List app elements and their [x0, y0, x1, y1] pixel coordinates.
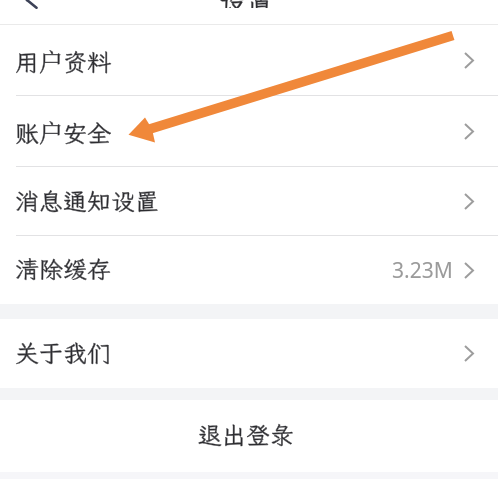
button[interactable]: 消息通知设置	[0, 167, 498, 236]
staticText: 退出登录	[198, 419, 294, 451]
staticText: 清除缓存	[15, 253, 111, 285]
staticText: 消息通知设置	[15, 185, 159, 217]
staticText: 用户资料	[15, 43, 111, 77]
staticText: 设置	[219, 0, 276, 8]
staticText: 清除缓存	[15, 253, 111, 285]
staticText: 3.23M	[392, 256, 453, 285]
staticText: 账户安全	[15, 114, 111, 148]
staticText: 用户资料	[15, 43, 111, 77]
staticText: 关于我们	[15, 337, 111, 369]
staticText: 关于我们	[15, 337, 111, 369]
button[interactable]: 关于我们	[0, 319, 498, 388]
button[interactable]: 用户资料	[0, 25, 498, 96]
staticText: 账户安全	[15, 114, 111, 148]
button[interactable]: 清除缓存	[0, 236, 498, 304]
staticText: 退出登录	[198, 419, 294, 451]
staticText: 设置	[219, 0, 276, 8]
button[interactable]: Back	[15, 0, 43, 9]
button[interactable]: 账户安全	[0, 96, 498, 167]
staticText: 消息通知设置	[15, 185, 159, 217]
button[interactable]: 退出登录	[150, 407, 342, 463]
